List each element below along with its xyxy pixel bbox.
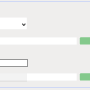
button[interactable]: Focused field <box>0 59 28 68</box>
button[interactable]: Text field <box>0 37 77 45</box>
button[interactable]: Select option <box>0 18 27 30</box>
button[interactable]: Text field <box>0 73 77 81</box>
button[interactable]: Add <box>80 37 90 45</box>
button[interactable]: Add <box>80 73 90 81</box>
